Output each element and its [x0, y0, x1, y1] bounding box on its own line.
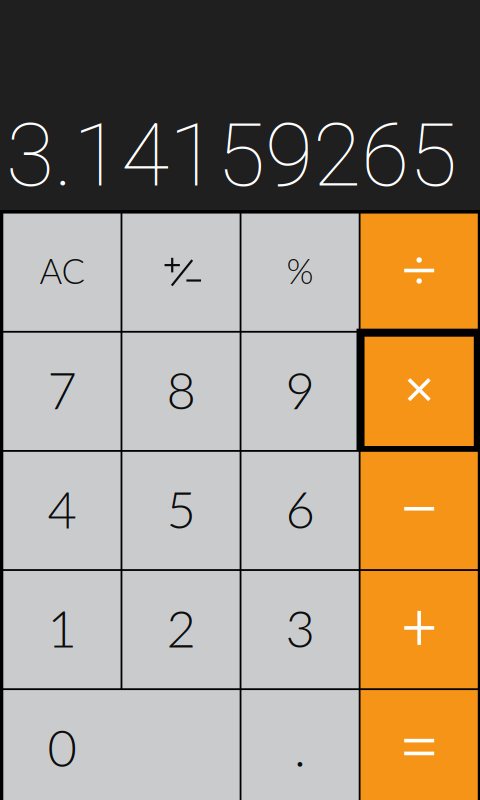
staticText: .: [294, 717, 306, 777]
staticText: 9: [286, 359, 315, 420]
staticText: AC: [39, 250, 84, 291]
button[interactable]: 9: [241, 333, 359, 450]
button[interactable]: 0: [3, 690, 240, 800]
button[interactable]: Plus minus: [122, 214, 240, 331]
button[interactable]: 2: [122, 571, 240, 688]
staticText: 2: [166, 597, 195, 658]
button[interactable]: 3: [241, 571, 359, 688]
button[interactable]: 4: [3, 452, 121, 569]
staticText: 3.14159265: [6, 104, 457, 207]
button[interactable]: Multiply: [360, 333, 478, 450]
staticText: 5: [166, 478, 195, 539]
button[interactable]: Plus: [360, 571, 478, 688]
button[interactable]: 7: [3, 333, 121, 450]
staticText: %: [287, 250, 314, 291]
button[interactable]: 1: [3, 571, 121, 688]
staticText: 1: [47, 597, 76, 658]
staticText: 6: [286, 478, 315, 539]
button[interactable]: 8: [122, 333, 240, 450]
button[interactable]: 6: [241, 452, 359, 569]
button[interactable]: Decimal point: [241, 690, 359, 800]
staticText: 7: [47, 359, 76, 420]
button[interactable]: Equals: [360, 690, 478, 800]
staticText: 8: [166, 359, 195, 420]
staticText: 3: [286, 597, 315, 658]
button[interactable]: Minus: [360, 452, 478, 569]
staticText: 0: [47, 717, 76, 777]
button[interactable]: AC: [3, 214, 121, 331]
button[interactable]: Divide: [360, 214, 478, 331]
staticText: 4: [47, 478, 76, 539]
button[interactable]: 5: [122, 452, 240, 569]
button[interactable]: %: [241, 214, 359, 331]
